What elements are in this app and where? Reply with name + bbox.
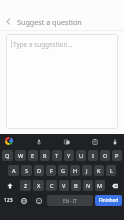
staticText: Type a suggestion...: [13, 40, 73, 49]
staticText: T: [55, 152, 59, 160]
button[interactable]: Z: [20, 180, 31, 191]
button[interactable]: Clipboard: [89, 136, 100, 147]
staticText: J: [86, 167, 88, 175]
staticText: Q: [5, 152, 10, 160]
staticText: 123: [4, 197, 13, 204]
button[interactable]: Google: [3, 135, 15, 147]
button[interactable]: O: [100, 150, 110, 161]
button[interactable]: P: [112, 150, 122, 161]
button[interactable]: T: [52, 150, 62, 161]
button[interactable]: A: [8, 165, 19, 176]
staticText: EN · IT: [63, 198, 77, 204]
button[interactable]: V: [59, 180, 69, 191]
button[interactable]: Q: [2, 150, 13, 161]
button[interactable]: 123: [2, 194, 15, 207]
staticText: K: [97, 167, 101, 175]
button[interactable]: R: [40, 150, 50, 161]
button[interactable]: More: [109, 136, 120, 147]
staticText: C: [50, 182, 54, 190]
staticText: F: [50, 167, 53, 175]
button[interactable]: Back: [0, 13, 17, 30]
staticText: R: [43, 152, 47, 160]
staticText: I: [92, 152, 94, 160]
button[interactable]: Backspace: [107, 180, 122, 191]
button[interactable]: X: [33, 180, 44, 191]
staticText: Suggest a question: [17, 17, 82, 27]
staticText: Finished: [99, 197, 119, 204]
staticText: Y: [67, 152, 71, 160]
button[interactable]: Type a suggestion...: [6, 34, 118, 129]
staticText: N: [86, 182, 91, 190]
staticText: X: [37, 182, 41, 190]
button[interactable]: J: [82, 165, 92, 176]
staticText: U: [79, 152, 84, 160]
button[interactable]: S: [21, 165, 32, 176]
button[interactable]: M: [95, 180, 105, 191]
button[interactable]: Voice input: [33, 136, 44, 147]
staticText: M: [97, 182, 103, 190]
button[interactable]: Change language: [17, 195, 30, 206]
staticText: E: [31, 152, 35, 160]
button[interactable]: Stickers: [61, 136, 72, 147]
staticText: P: [115, 152, 119, 160]
staticText: H: [73, 167, 78, 175]
button[interactable]: C: [46, 180, 57, 191]
staticText: O: [103, 152, 108, 160]
staticText: Z: [24, 182, 28, 190]
button[interactable]: D: [34, 165, 44, 176]
button[interactable]: N: [83, 180, 93, 191]
button[interactable]: Finished: [95, 195, 122, 206]
staticText: G: [61, 167, 66, 175]
button[interactable]: E: [28, 150, 38, 161]
button[interactable]: L: [106, 165, 116, 176]
button[interactable]: B: [71, 180, 81, 191]
button[interactable]: W: [15, 150, 26, 161]
button[interactable]: Emoji: [32, 195, 45, 206]
button[interactable]: Y: [64, 150, 74, 161]
button[interactable]: Shift: [2, 180, 18, 191]
staticText: V: [62, 182, 66, 190]
button[interactable]: K: [94, 165, 104, 176]
staticText: W: [18, 152, 24, 160]
button[interactable]: G: [58, 165, 68, 176]
button[interactable]: U: [76, 150, 86, 161]
button[interactable]: I: [88, 150, 98, 161]
button[interactable]: EN · IT: [47, 195, 93, 206]
staticText: S: [25, 167, 29, 175]
staticText: D: [37, 167, 42, 175]
staticText: L: [110, 167, 113, 175]
button[interactable]: H: [70, 165, 80, 176]
staticText: A: [12, 167, 16, 175]
staticText: B: [74, 182, 78, 190]
button[interactable]: F: [46, 165, 56, 176]
